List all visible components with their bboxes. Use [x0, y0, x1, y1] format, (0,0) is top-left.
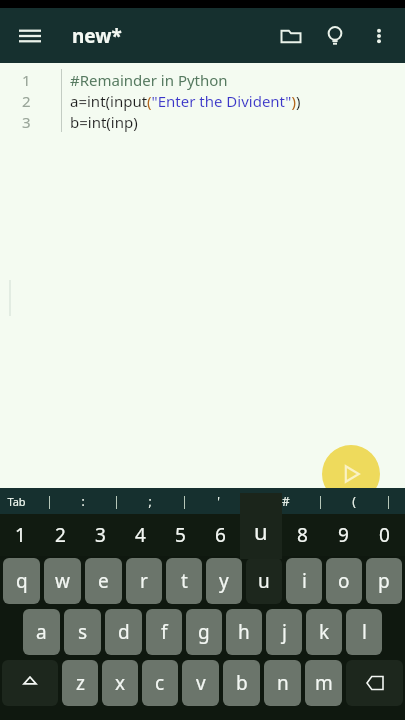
staticText: 1	[22, 70, 31, 90]
button[interactable]: z	[62, 660, 98, 706]
staticText: '	[217, 493, 220, 509]
staticText: |	[181, 493, 188, 509]
staticText: (	[352, 493, 356, 509]
staticText: 2	[22, 91, 31, 111]
button[interactable]: Open folder	[269, 14, 313, 58]
staticText: h	[238, 619, 250, 645]
staticText: u	[258, 568, 270, 594]
button[interactable]: p	[366, 558, 402, 604]
staticText: |	[385, 493, 392, 509]
button[interactable]: |	[167, 488, 201, 514]
staticText: p	[378, 568, 390, 594]
button[interactable]: q	[3, 558, 40, 604]
staticText: q	[16, 568, 28, 594]
staticText: u	[254, 516, 268, 546]
button[interactable]: c	[142, 660, 178, 706]
staticText: 2	[55, 522, 66, 548]
button[interactable]: Run	[322, 445, 380, 503]
button[interactable]: 3	[80, 514, 120, 556]
staticText: 0	[379, 522, 390, 548]
button[interactable]: 0	[364, 514, 405, 556]
staticText: 4	[135, 522, 146, 548]
staticText: m	[315, 670, 333, 696]
staticText: y	[219, 568, 229, 594]
button[interactable]: More options	[357, 14, 401, 58]
staticText: d	[118, 619, 130, 645]
button[interactable]: 2	[40, 514, 80, 556]
button[interactable]: |	[371, 488, 405, 514]
button[interactable]: Hints	[313, 14, 357, 58]
staticText: i	[302, 568, 307, 594]
staticText: a	[36, 619, 47, 645]
button[interactable]: v	[182, 660, 219, 706]
staticText: 6	[215, 522, 226, 548]
button[interactable]: Shift	[2, 660, 58, 706]
button[interactable]: n	[264, 660, 301, 706]
button[interactable]: i	[286, 558, 322, 604]
staticText: g	[198, 619, 210, 645]
button[interactable]: |	[303, 488, 337, 514]
staticText: 1	[15, 522, 26, 548]
button[interactable]: '	[201, 488, 235, 514]
button[interactable]: 4	[120, 514, 160, 556]
staticText: |	[46, 493, 53, 509]
staticText: ;	[148, 493, 152, 509]
button[interactable]: t	[166, 558, 202, 604]
staticText: 5	[175, 522, 186, 548]
button[interactable]: e	[85, 558, 122, 604]
button[interactable]: Backspace	[346, 660, 403, 706]
button[interactable]: :	[66, 488, 99, 514]
button[interactable]: Tab	[0, 488, 33, 514]
button[interactable]: y	[206, 558, 242, 604]
button[interactable]: k	[306, 609, 342, 655]
staticText: k	[319, 619, 330, 645]
button[interactable]: (	[337, 488, 371, 514]
button[interactable]: 7	[241, 514, 282, 556]
staticText: 3	[22, 112, 31, 132]
button[interactable]: j	[266, 609, 302, 655]
button[interactable]: m	[305, 660, 342, 706]
button[interactable]: Menu	[8, 14, 52, 58]
button[interactable]: w	[44, 558, 81, 604]
button[interactable]: g	[186, 609, 222, 655]
button[interactable]: |	[99, 488, 133, 514]
button[interactable]: x	[102, 660, 138, 706]
staticText: #	[282, 493, 290, 509]
staticText: new*	[72, 23, 122, 49]
staticText: w	[55, 568, 70, 594]
staticText: b	[236, 670, 248, 696]
button[interactable]: s	[64, 609, 101, 655]
staticText: o	[338, 568, 350, 594]
button[interactable]: o	[326, 558, 362, 604]
button[interactable]: 1	[0, 514, 40, 556]
staticText: 7	[256, 522, 267, 548]
staticText: e	[98, 568, 109, 594]
button[interactable]: u	[246, 558, 282, 604]
button[interactable]: r	[126, 558, 162, 604]
button[interactable]: a	[23, 609, 60, 655]
button[interactable]: d	[105, 609, 142, 655]
button[interactable]: 5	[160, 514, 200, 556]
staticText: Tab	[7, 494, 26, 509]
staticText: |	[113, 493, 120, 509]
staticText: v	[196, 670, 206, 696]
button[interactable]: #	[269, 488, 303, 514]
staticText: |	[317, 493, 324, 509]
button[interactable]: h	[226, 609, 262, 655]
staticText: t	[181, 568, 188, 594]
staticText: f	[161, 619, 168, 645]
button[interactable]: b	[223, 660, 260, 706]
staticText: b=int(inp)	[70, 112, 138, 132]
button[interactable]: ;	[133, 488, 167, 514]
staticText: 9	[338, 522, 349, 548]
button[interactable]: f	[146, 609, 182, 655]
staticText: n	[277, 670, 289, 696]
button[interactable]: 9	[323, 514, 364, 556]
button[interactable]: l	[346, 609, 382, 655]
button[interactable]: 6	[200, 514, 241, 556]
button[interactable]: |	[33, 488, 66, 514]
staticText: :	[81, 493, 85, 509]
button[interactable]: 8	[282, 514, 323, 556]
button[interactable]: "	[235, 488, 269, 514]
